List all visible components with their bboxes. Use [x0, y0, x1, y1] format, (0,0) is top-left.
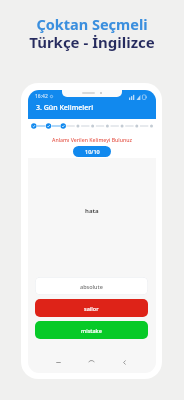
button[interactable]: Home — [87, 358, 96, 367]
button[interactable]: absolute — [35, 277, 148, 295]
button[interactable]: Back — [120, 358, 129, 367]
staticText: Anlamı Verilen Kelimeyi Bulunuz — [52, 136, 132, 143]
staticText: absolute — [80, 283, 103, 290]
staticText: 3. Gün Kelimeleri — [36, 103, 94, 113]
button[interactable]: sailor — [35, 299, 148, 317]
button[interactable]: mistake — [35, 321, 148, 339]
staticText: mistake — [81, 327, 102, 334]
staticText: Çoktan Seçmeli — [36, 14, 148, 34]
staticText: hata — [85, 207, 99, 215]
staticText: Türkçe - İngilizce — [29, 32, 155, 52]
staticText: 10/10 — [85, 148, 100, 155]
button[interactable]: Recent apps — [54, 358, 63, 367]
staticText: sailor — [84, 305, 99, 312]
staticText: 16:42 — [35, 93, 48, 99]
button[interactable]: 10/10 — [73, 146, 111, 157]
